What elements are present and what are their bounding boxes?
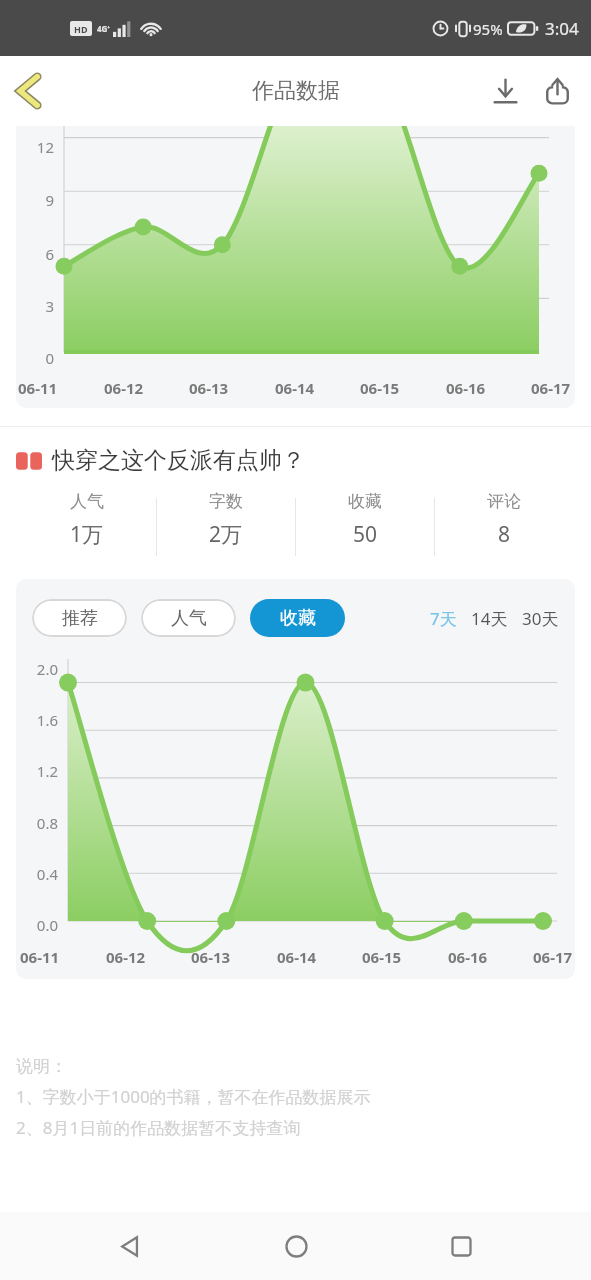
staticText: 推荐	[62, 607, 98, 630]
staticText: 06-13	[189, 378, 229, 398]
staticText: 1万	[70, 520, 104, 549]
staticText: 06-17	[533, 947, 573, 967]
staticText: 2万	[209, 520, 243, 549]
staticText: 06-17	[531, 378, 571, 398]
staticText: 4G⁺	[97, 23, 111, 34]
button[interactable]: 收藏	[250, 599, 345, 637]
staticText: 3:04	[545, 17, 579, 40]
staticText: 06-13	[191, 947, 231, 967]
staticText: 06-11	[18, 378, 58, 398]
staticText: 3	[34, 296, 54, 316]
staticText: 06-15	[362, 947, 402, 967]
staticText: 06-16	[446, 378, 486, 398]
staticText: 9	[34, 190, 54, 210]
staticText: 2.0	[24, 659, 58, 679]
staticText: 0.0	[24, 915, 58, 935]
staticText: 人气	[171, 607, 207, 630]
button[interactable]: 快穿之这个反派有点帅？	[16, 446, 591, 475]
staticText: 0.8	[24, 813, 58, 833]
staticText: 快穿之这个反派有点帅？	[52, 446, 305, 475]
staticText: 收藏	[280, 607, 316, 630]
button[interactable]: 收藏	[296, 491, 434, 549]
button[interactable]: Back	[95, 1212, 165, 1280]
staticText: 字数	[209, 491, 243, 512]
staticText: 1、字数小于1000的书籍，暂不在作品数据展示	[16, 1085, 371, 1108]
staticText: 1.2	[24, 761, 58, 781]
staticText: 6	[34, 244, 54, 264]
button[interactable]: 评论	[435, 491, 573, 549]
staticText: 8	[498, 520, 511, 549]
staticText: 06-14	[275, 378, 315, 398]
button[interactable]: 推荐	[32, 599, 127, 637]
staticText: 06-15	[360, 378, 400, 398]
staticText: 06-14	[277, 947, 317, 967]
button[interactable]: Download	[479, 65, 531, 117]
button[interactable]: Share	[531, 65, 583, 117]
staticText: 评论	[487, 491, 521, 512]
button[interactable]: 7天	[428, 607, 459, 630]
button[interactable]: 字数	[157, 491, 295, 549]
staticText: 06-11	[20, 947, 60, 967]
staticText: 1.6	[24, 710, 58, 730]
staticText: 作品数据	[252, 77, 340, 105]
staticText: 06-12	[106, 947, 146, 967]
staticText: 06-12	[104, 378, 144, 398]
staticText: 0	[34, 348, 54, 368]
staticText: HD	[74, 23, 88, 35]
staticText: 收藏	[348, 491, 382, 512]
button[interactable]: Back	[0, 62, 58, 120]
button[interactable]: 人气	[141, 599, 236, 637]
staticText: 50	[353, 520, 378, 549]
staticText: 06-16	[448, 947, 488, 967]
staticText: 2、8月1日前的作品数据暂不支持查询	[16, 1116, 301, 1139]
staticText: 0.4	[24, 864, 58, 884]
button[interactable]: Home	[261, 1212, 331, 1280]
staticText: 说明：	[16, 1056, 67, 1077]
button[interactable]: 人气	[18, 491, 156, 549]
staticText: 人气	[70, 491, 104, 512]
button[interactable]: Recents	[426, 1212, 496, 1280]
staticText: 12	[34, 137, 54, 157]
button[interactable]: 14天	[469, 607, 510, 630]
button[interactable]: 30天	[520, 607, 561, 630]
staticText: 95%	[473, 19, 503, 39]
